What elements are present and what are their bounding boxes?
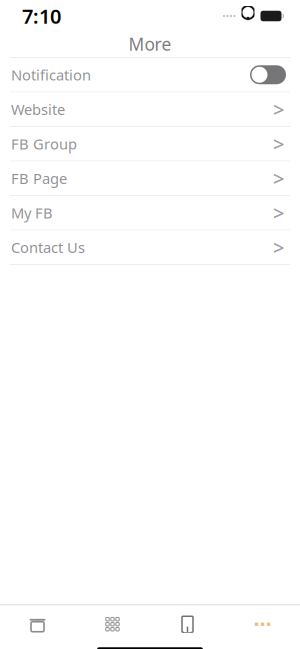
- staticText: FB Group: [11, 134, 77, 153]
- button[interactable]: FB Page: [0, 161, 300, 195]
- staticText: Contact Us: [11, 237, 85, 257]
- button[interactable]: Bookmarks: [150, 609, 225, 639]
- button[interactable]: More: [225, 609, 300, 639]
- staticText: FB Page: [11, 168, 67, 188]
- staticText: Website: [11, 99, 65, 119]
- staticText: >: [273, 130, 284, 157]
- staticText: More: [128, 32, 171, 55]
- staticText: 7:10: [22, 3, 61, 29]
- button[interactable]: My FB: [0, 196, 300, 229]
- staticText: >: [273, 199, 284, 226]
- staticText: >: [273, 234, 284, 261]
- staticText: >: [273, 96, 284, 123]
- button[interactable]: Notification: [0, 58, 300, 91]
- staticText: My FB: [11, 203, 53, 222]
- staticText: Notification: [11, 65, 91, 84]
- button[interactable]: Contact Us: [0, 230, 300, 264]
- staticText: >: [273, 165, 284, 192]
- button[interactable]: Categories: [75, 609, 150, 639]
- button[interactable]: Home: [0, 609, 75, 639]
- button[interactable]: Website: [0, 92, 300, 126]
- button[interactable]: FB Group: [0, 127, 300, 160]
